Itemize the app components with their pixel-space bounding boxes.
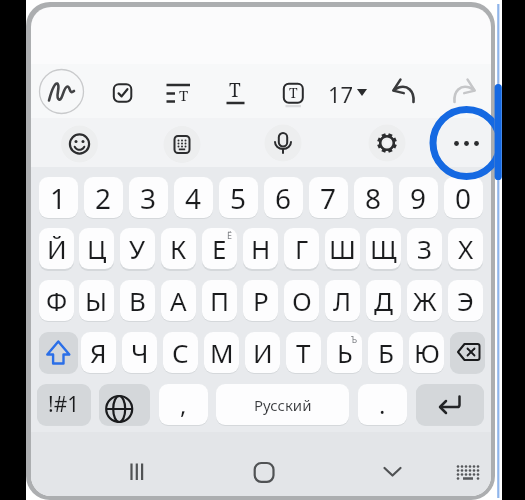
button[interactable]: Т bbox=[286, 332, 321, 373]
staticText: 5 bbox=[230, 179, 247, 217]
staticText: 9 bbox=[410, 179, 427, 217]
button[interactable]: К bbox=[161, 228, 196, 269]
button[interactable]: 4 bbox=[174, 177, 213, 218]
button[interactable]: Ж bbox=[407, 280, 442, 321]
button[interactable] bbox=[327, 75, 373, 111]
button[interactable]: А bbox=[161, 280, 196, 321]
button[interactable]: . bbox=[358, 384, 407, 425]
staticText: Ъ bbox=[351, 333, 358, 345]
staticText: Р bbox=[253, 283, 269, 318]
staticText: П bbox=[210, 283, 230, 318]
button[interactable] bbox=[444, 118, 487, 161]
button[interactable]: 6 bbox=[264, 177, 303, 218]
button[interactable]: 9 bbox=[399, 177, 438, 218]
button[interactable] bbox=[39, 332, 78, 373]
button[interactable]: 1 bbox=[39, 177, 78, 218]
button[interactable] bbox=[262, 118, 305, 161]
button[interactable]: Д bbox=[366, 280, 401, 321]
button[interactable]: 8 bbox=[354, 177, 393, 218]
button[interactable]: 2 bbox=[84, 177, 123, 218]
button[interactable]: Х bbox=[448, 228, 483, 269]
button[interactable] bbox=[160, 118, 203, 161]
button[interactable] bbox=[372, 452, 412, 492]
staticText: Т bbox=[296, 335, 311, 370]
button[interactable]: И bbox=[245, 332, 280, 373]
button[interactable]: Щ bbox=[366, 228, 401, 269]
button[interactable]: В bbox=[120, 280, 155, 321]
button[interactable] bbox=[216, 384, 349, 425]
button[interactable]: М bbox=[204, 332, 239, 373]
staticText: Н bbox=[251, 231, 271, 266]
staticText: Русский bbox=[254, 395, 312, 415]
button[interactable]: Э bbox=[448, 280, 483, 321]
button[interactable]: Е bbox=[202, 228, 237, 269]
staticText: 17 bbox=[328, 79, 354, 105]
button[interactable]: Й bbox=[39, 228, 74, 269]
button[interactable] bbox=[116, 452, 156, 492]
button[interactable]: У bbox=[120, 228, 155, 269]
staticText: , bbox=[180, 388, 187, 421]
button[interactable]: 3 bbox=[129, 177, 168, 218]
button[interactable]: Р bbox=[243, 280, 278, 321]
button[interactable]: З bbox=[407, 228, 442, 269]
button[interactable] bbox=[444, 75, 480, 111]
staticText: У bbox=[129, 231, 146, 266]
button[interactable] bbox=[105, 75, 141, 111]
button[interactable]: , bbox=[159, 384, 208, 425]
button[interactable]: Ь bbox=[327, 332, 362, 373]
button[interactable]: О bbox=[284, 280, 319, 321]
staticText: 0 bbox=[455, 179, 472, 217]
button[interactable]: Ц bbox=[79, 228, 114, 269]
button[interactable] bbox=[161, 75, 197, 111]
staticText: И bbox=[253, 335, 273, 370]
button[interactable] bbox=[416, 384, 484, 425]
button[interactable] bbox=[39, 68, 91, 120]
staticText: Ш bbox=[329, 231, 356, 266]
button[interactable]: Я bbox=[81, 332, 116, 373]
staticText: А bbox=[170, 283, 187, 318]
button[interactable]: 5 bbox=[219, 177, 258, 218]
staticText: 6 bbox=[275, 179, 292, 217]
staticText: 1 bbox=[50, 179, 67, 217]
button[interactable]: Н bbox=[243, 228, 278, 269]
staticText: T bbox=[229, 77, 241, 99]
button[interactable]: !#1 bbox=[37, 384, 91, 425]
button[interactable]: Г bbox=[284, 228, 319, 269]
staticText: Ы bbox=[85, 283, 108, 318]
button[interactable]: 7 bbox=[309, 177, 348, 218]
button[interactable] bbox=[388, 75, 424, 111]
button[interactable] bbox=[447, 452, 487, 492]
staticText: С bbox=[172, 335, 189, 370]
staticText: Й bbox=[47, 231, 67, 266]
staticText: Л bbox=[333, 283, 352, 318]
button[interactable]: Б bbox=[368, 332, 403, 373]
button[interactable]: П bbox=[202, 280, 237, 321]
button[interactable] bbox=[99, 384, 150, 425]
button[interactable]: Ш bbox=[325, 228, 360, 269]
staticText: 8 bbox=[365, 179, 382, 217]
button[interactable] bbox=[58, 118, 101, 161]
button[interactable]: Ч bbox=[122, 332, 157, 373]
staticText: !#1 bbox=[48, 390, 80, 419]
staticText: Е bbox=[212, 231, 227, 266]
staticText: Ч bbox=[131, 335, 149, 370]
staticText: Х bbox=[458, 231, 474, 266]
button[interactable] bbox=[217, 75, 253, 111]
button[interactable]: С bbox=[163, 332, 198, 373]
staticText: Ж bbox=[413, 283, 437, 318]
button[interactable]: Л bbox=[325, 280, 360, 321]
button[interactable]: Ю bbox=[409, 332, 444, 373]
staticText: Э bbox=[457, 283, 474, 318]
button[interactable] bbox=[450, 332, 485, 373]
button[interactable]: Ы bbox=[79, 280, 114, 321]
button[interactable] bbox=[274, 75, 310, 111]
button[interactable] bbox=[243, 452, 283, 492]
button[interactable]: Ф bbox=[39, 280, 74, 321]
button[interactable]: 0 bbox=[444, 177, 483, 218]
staticText: . bbox=[379, 388, 386, 421]
button[interactable] bbox=[365, 118, 408, 161]
staticText: 7 bbox=[320, 179, 337, 217]
staticText: К bbox=[170, 231, 187, 266]
staticText: О bbox=[292, 283, 312, 318]
staticText: T bbox=[289, 83, 298, 102]
